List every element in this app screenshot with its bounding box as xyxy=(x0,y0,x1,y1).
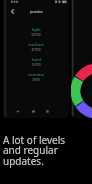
staticText: 37/100 xyxy=(31,48,41,52)
staticText: A lot of levels and regular updates. xyxy=(3,133,66,168)
staticText: 12/100 xyxy=(31,63,41,67)
button[interactable]: Home xyxy=(31,109,36,114)
staticText: puzzles xyxy=(30,9,43,14)
button[interactable]: Back xyxy=(15,109,20,114)
button[interactable]: Recent apps xyxy=(45,109,50,114)
button[interactable]: Back xyxy=(8,7,17,16)
staticText: hard xyxy=(32,57,41,62)
staticText: extreme xyxy=(28,72,44,77)
staticText: medium xyxy=(28,42,44,47)
button[interactable]: light xyxy=(3,27,69,42)
button[interactable]: hard xyxy=(3,57,69,72)
staticText: 50/100 xyxy=(31,33,41,37)
staticText: light xyxy=(32,27,41,32)
button[interactable]: extreme xyxy=(3,72,69,87)
staticText: 3/100 xyxy=(32,78,40,82)
button[interactable]: medium xyxy=(3,42,69,57)
